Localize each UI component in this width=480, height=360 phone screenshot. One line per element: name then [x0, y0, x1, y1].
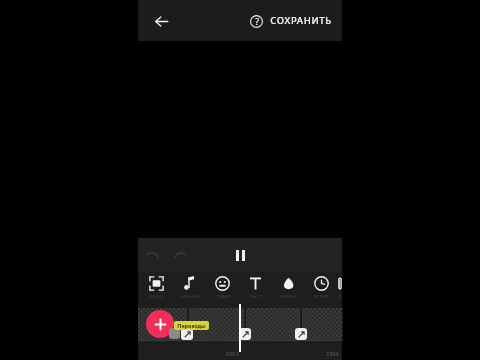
button[interactable]: Back — [146, 6, 176, 36]
button[interactable]: Undo — [144, 247, 160, 263]
button[interactable]: ВРЕМЯ — [305, 271, 338, 304]
button[interactable]: Help — [242, 7, 270, 35]
staticText: МУЗЫКА — [181, 294, 199, 300]
staticText: СТИКЕР — [215, 294, 231, 300]
button[interactable]: Add clip — [146, 310, 174, 338]
button[interactable]: ЭФФЕКТ — [272, 271, 305, 304]
staticText: ВИДЕО — [149, 294, 164, 300]
button[interactable]: Transition — [295, 328, 307, 340]
button[interactable]: РАЗД — [338, 271, 342, 304]
button[interactable]: СОХРАНИТЬ — [264, 8, 338, 33]
staticText: СОХРАНИТЬ — [270, 14, 332, 27]
staticText: ВРЕМЯ — [314, 294, 329, 300]
button[interactable]: Transition — [169, 328, 180, 339]
button[interactable]: МУЗЫКА — [173, 271, 206, 304]
staticText: Переходы — [177, 322, 206, 329]
staticText: РАЗД — [338, 294, 342, 300]
button[interactable]: Transition — [181, 328, 193, 340]
staticText: 2:59.6 — [326, 351, 339, 357]
button[interactable]: ВИДЕО — [140, 271, 173, 304]
staticText: ЭФФЕКТ — [280, 294, 297, 300]
button[interactable]: Pause — [228, 243, 252, 267]
staticText: ТЕКСТ — [249, 294, 262, 300]
button[interactable]: Redo — [172, 247, 188, 263]
staticText: 0:00.3 — [226, 351, 239, 357]
button[interactable]: ТЕКСТ — [239, 271, 272, 304]
button[interactable]: СТИКЕР — [206, 271, 239, 304]
button[interactable]: Transition — [239, 328, 251, 340]
staticText: ? — [255, 16, 259, 28]
